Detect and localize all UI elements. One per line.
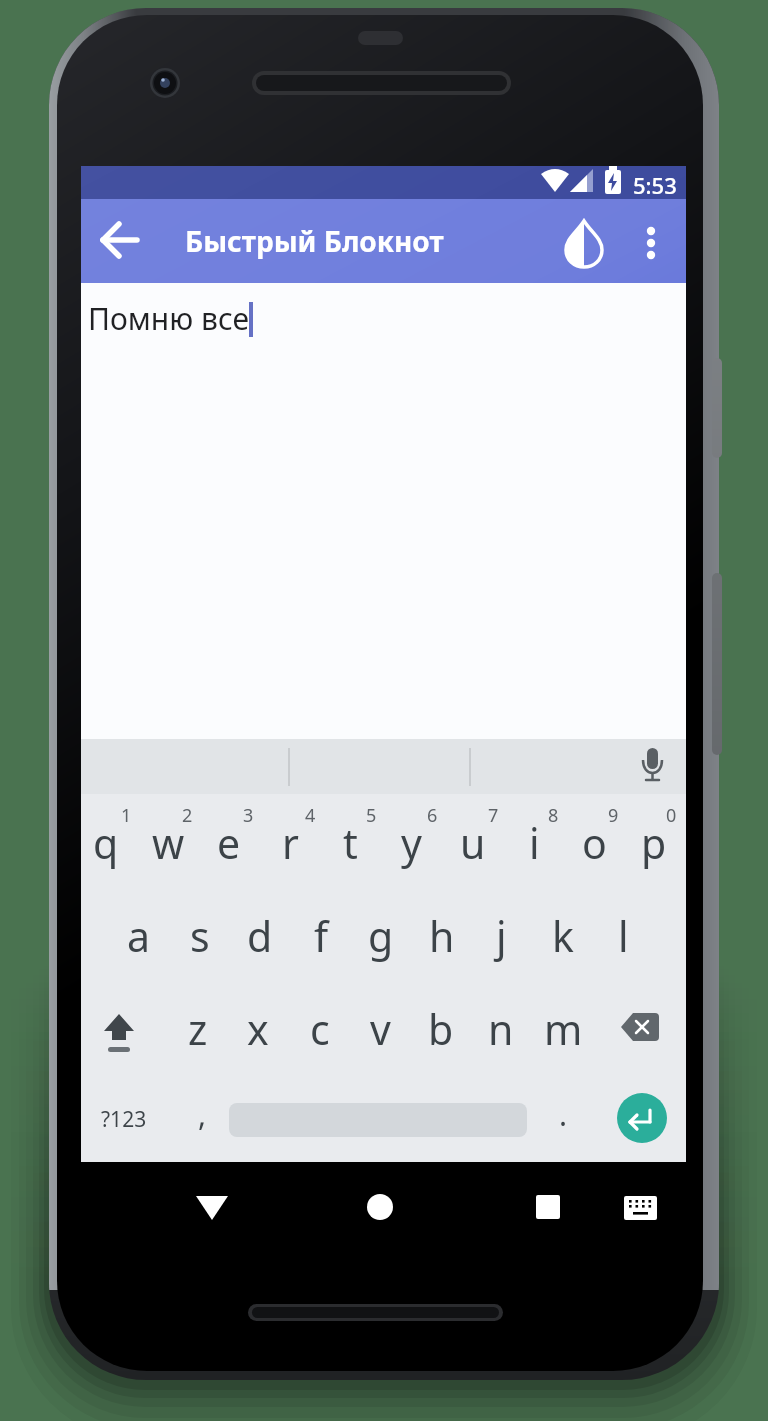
staticText: k (552, 908, 574, 964)
staticText: z (188, 1001, 208, 1057)
button[interactable]: p (624, 803, 684, 883)
button[interactable] (93, 1000, 145, 1058)
staticText: l (618, 908, 629, 964)
button[interactable]: k (533, 896, 593, 976)
staticText: 4 (305, 803, 316, 828)
staticText: o (582, 815, 607, 871)
staticText: Помню все (88, 298, 249, 339)
button[interactable]: w (138, 803, 198, 883)
staticText: r (282, 815, 299, 871)
staticText: v (370, 1001, 391, 1057)
button[interactable]: a (109, 896, 169, 976)
staticText: p (641, 815, 667, 871)
button[interactable]: v (350, 989, 410, 1069)
button[interactable] (186, 1182, 238, 1230)
button[interactable]: q (76, 803, 136, 883)
staticText: 6 (427, 803, 438, 828)
staticText: Быстрый Блокнот (185, 222, 444, 260)
staticText: . (559, 1094, 568, 1135)
staticText: y (401, 815, 422, 871)
button[interactable] (354, 1182, 406, 1230)
staticText: e (217, 815, 241, 871)
staticText: t (343, 815, 358, 871)
button[interactable]: f (291, 896, 351, 976)
staticText: 2 (182, 803, 193, 828)
staticText: q (93, 815, 119, 871)
staticText: 7 (488, 803, 499, 828)
button[interactable]: o (564, 803, 624, 883)
button[interactable] (522, 1182, 574, 1230)
button[interactable]: b (411, 989, 471, 1069)
button[interactable] (628, 742, 678, 792)
staticText: n (488, 1001, 514, 1057)
button[interactable]: t (320, 803, 380, 883)
staticText: 5 (366, 803, 377, 828)
staticText: d (247, 908, 273, 964)
staticText: b (428, 1001, 454, 1057)
button[interactable]: j (471, 896, 531, 976)
button[interactable] (617, 1093, 667, 1143)
staticText: i (529, 815, 540, 871)
staticText: , (198, 1094, 207, 1135)
button[interactable]: h (412, 896, 472, 976)
staticText: s (190, 908, 210, 964)
button[interactable]: y (381, 803, 441, 883)
button[interactable]: l (593, 896, 653, 976)
button[interactable]: x (228, 989, 288, 1069)
staticText: h (429, 908, 455, 964)
staticText: 8 (548, 803, 559, 828)
button[interactable]: n (471, 989, 531, 1069)
button[interactable]: s (170, 896, 230, 976)
button[interactable]: m (533, 989, 593, 1069)
button[interactable] (614, 1182, 666, 1230)
staticText: w (152, 815, 185, 871)
staticText: 3 (243, 803, 254, 828)
button[interactable] (95, 215, 145, 265)
staticText: x (247, 1001, 269, 1057)
staticText: 0 (666, 803, 677, 828)
staticText: u (460, 815, 486, 871)
button[interactable]: g (351, 896, 411, 976)
staticText: 5:53 (633, 170, 677, 196)
button[interactable]: i (504, 803, 564, 883)
button[interactable]: e (199, 803, 259, 883)
staticText: j (496, 908, 507, 964)
staticText: c (310, 1001, 330, 1057)
button[interactable] (558, 218, 610, 268)
button[interactable]: z (168, 989, 228, 1069)
staticText: g (368, 908, 394, 964)
button[interactable]: c (290, 989, 350, 1069)
button[interactable]: u (443, 803, 503, 883)
staticText: m (544, 1001, 583, 1057)
staticText: 9 (608, 803, 619, 828)
button[interactable]: d (230, 896, 290, 976)
staticText: a (127, 908, 151, 964)
button[interactable] (630, 218, 672, 268)
staticText: ?123 (101, 1105, 147, 1134)
staticText: 1 (121, 803, 132, 828)
button[interactable] (612, 1000, 668, 1058)
staticText: f (314, 908, 329, 964)
button[interactable]: r (260, 803, 320, 883)
